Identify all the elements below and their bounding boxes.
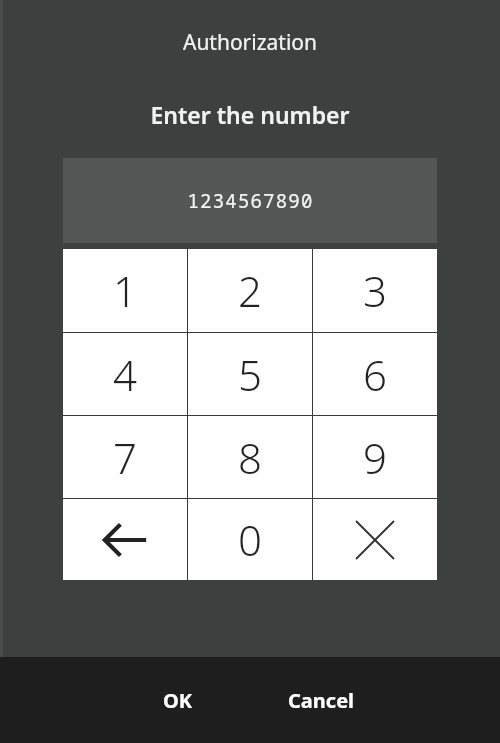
button[interactable]: 4 bbox=[63, 333, 187, 415]
button[interactable]: 8 bbox=[188, 416, 312, 498]
staticText: 3 bbox=[363, 262, 387, 319]
staticText: Cancel bbox=[288, 687, 355, 714]
button[interactable]: 9 bbox=[313, 416, 437, 498]
button[interactable]: Cancel bbox=[261, 657, 381, 743]
button[interactable]: OK bbox=[128, 657, 228, 743]
button[interactable]: Backspace bbox=[63, 499, 187, 580]
staticText: 4 bbox=[113, 346, 137, 403]
button[interactable]: 1234567890 bbox=[63, 158, 437, 243]
button[interactable]: 7 bbox=[63, 416, 187, 498]
button[interactable]: 0 bbox=[188, 499, 312, 580]
staticText: 5 bbox=[238, 346, 262, 403]
button[interactable]: 6 bbox=[313, 333, 437, 415]
button[interactable]: 3 bbox=[313, 249, 437, 332]
staticText: 8 bbox=[238, 429, 262, 486]
staticText: 1 bbox=[113, 262, 137, 319]
staticText: Authorization bbox=[0, 28, 500, 57]
button[interactable]: 1 bbox=[63, 249, 187, 332]
button[interactable]: Clear bbox=[313, 499, 437, 580]
staticText: OK bbox=[163, 687, 193, 714]
staticText: 1234567890 bbox=[187, 188, 314, 214]
staticText: Enter the number bbox=[0, 99, 500, 130]
button[interactable]: 2 bbox=[188, 249, 312, 332]
button[interactable]: 5 bbox=[188, 333, 312, 415]
staticText: 0 bbox=[238, 511, 262, 568]
staticText: 9 bbox=[363, 429, 387, 486]
staticText: 7 bbox=[113, 429, 137, 486]
staticText: 6 bbox=[363, 346, 387, 403]
staticText: 2 bbox=[238, 262, 262, 319]
